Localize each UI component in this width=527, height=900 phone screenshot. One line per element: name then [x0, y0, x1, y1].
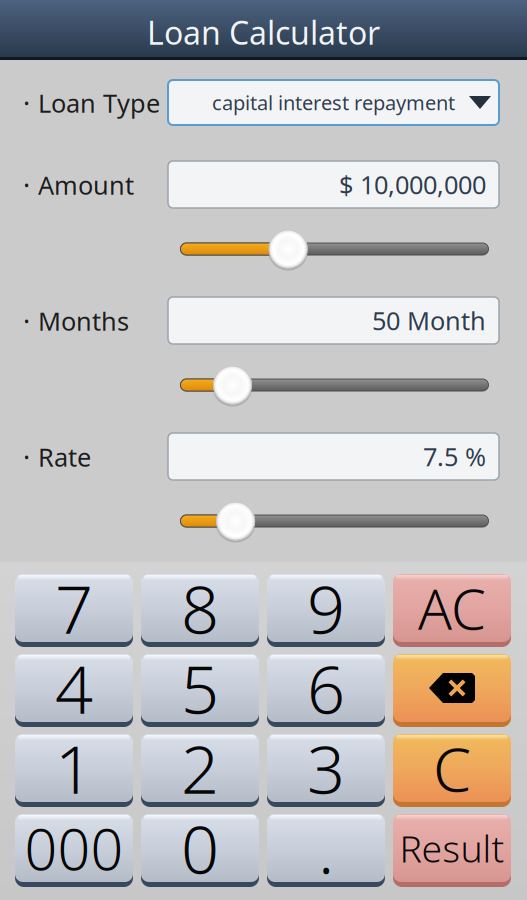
- staticText: $ 10,000,000: [339, 168, 486, 201]
- staticText: 1: [55, 724, 93, 812]
- button[interactable]: 2: [141, 734, 259, 805]
- staticText: 2: [181, 724, 219, 812]
- staticText: 3: [307, 724, 345, 812]
- staticText: ·: [23, 303, 30, 339]
- staticText: 6: [307, 644, 345, 732]
- button[interactable]: 000: [15, 814, 133, 885]
- button[interactable]: 7: [15, 574, 133, 645]
- staticText: ·: [23, 85, 30, 121]
- staticText: .: [318, 804, 334, 892]
- button[interactable]: 1: [15, 734, 133, 805]
- staticText: Rate: [38, 440, 91, 474]
- staticText: 0: [181, 804, 219, 892]
- button[interactable]: $ 10,000,000: [168, 161, 499, 208]
- button[interactable]: 9: [267, 574, 385, 645]
- button[interactable]: Result: [393, 814, 511, 885]
- staticText: 50 Month: [372, 304, 486, 337]
- staticText: 000: [24, 810, 123, 886]
- button[interactable]: 7.5 %: [168, 433, 499, 480]
- staticText: Loan Type: [38, 86, 160, 120]
- staticText: AC: [418, 571, 486, 645]
- staticText: 9: [307, 564, 345, 652]
- button[interactable]: 6: [267, 654, 385, 725]
- button[interactable]: 0: [141, 814, 259, 885]
- staticText: Result: [399, 823, 504, 873]
- staticText: ·: [23, 439, 30, 475]
- staticText: capital interest repayment: [212, 89, 455, 116]
- button[interactable]: 50 Month: [168, 297, 499, 344]
- staticText: Loan Calculator: [147, 11, 380, 53]
- staticText: 7: [55, 564, 93, 652]
- staticText: 8: [181, 564, 219, 652]
- button[interactable]: 4: [15, 654, 133, 725]
- staticText: 7.5 %: [423, 440, 486, 473]
- staticText: 5: [181, 644, 219, 732]
- button[interactable]: Clear: [393, 734, 511, 805]
- staticText: C: [433, 727, 471, 809]
- staticText: 4: [55, 644, 93, 732]
- button[interactable]: .: [267, 814, 385, 885]
- button[interactable]: capital interest repayment: [168, 80, 499, 125]
- button[interactable]: Backspace: [393, 654, 511, 725]
- staticText: ·: [23, 167, 30, 203]
- staticText: Months: [38, 304, 129, 338]
- button[interactable]: 5: [141, 654, 259, 725]
- button[interactable]: 3: [267, 734, 385, 805]
- button[interactable]: All clear: [393, 574, 511, 645]
- staticText: Amount: [38, 168, 134, 202]
- button[interactable]: 8: [141, 574, 259, 645]
